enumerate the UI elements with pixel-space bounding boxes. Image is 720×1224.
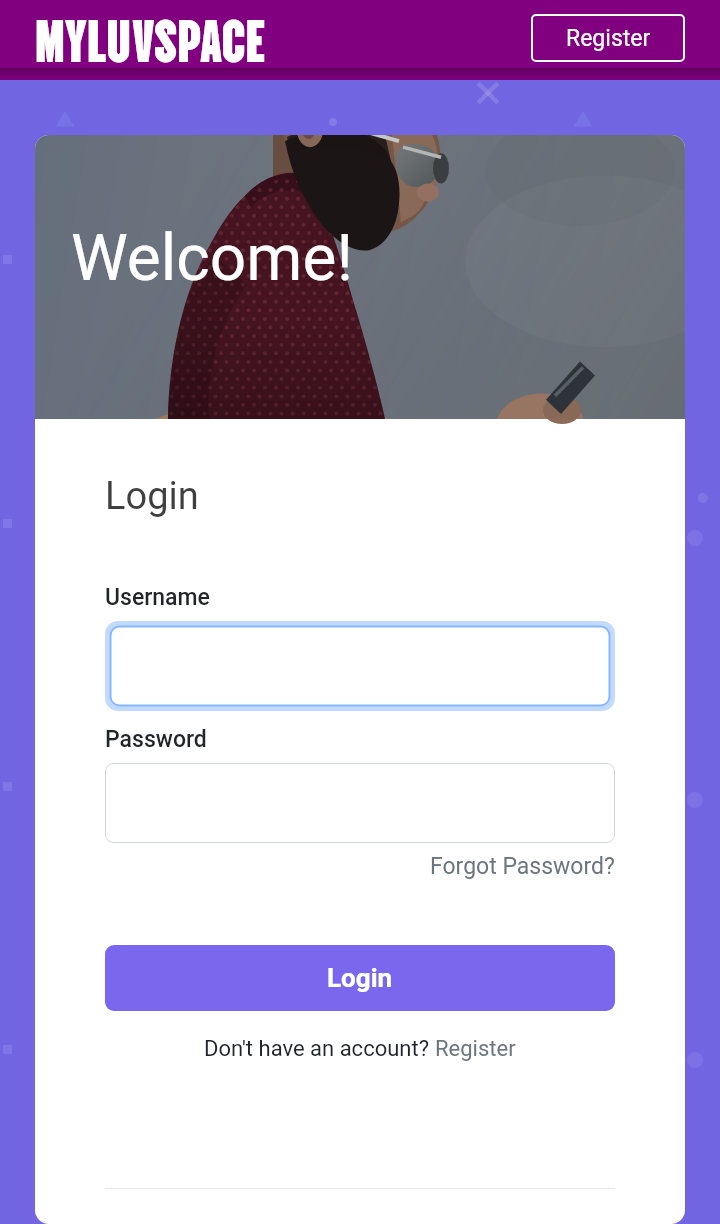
button[interactable] [105, 621, 615, 711]
staticText: Register [435, 1036, 516, 1062]
staticText: MYLUVSPACE [35, 0, 266, 72]
staticText: Login [327, 963, 393, 993]
staticText: Register [566, 25, 651, 52]
button[interactable]: Login [105, 945, 615, 1011]
button[interactable]: MYLUVSPACE [35, 0, 266, 72]
button[interactable] [105, 763, 615, 843]
button[interactable]: Register [435, 1036, 516, 1062]
button[interactable]: Forgot Password? [430, 853, 615, 880]
staticText: Forgot Password? [430, 853, 615, 880]
staticText: Login [105, 474, 199, 519]
staticText: Welcome! [71, 221, 353, 296]
staticText: Don't have an account? [204, 1036, 435, 1062]
staticText: Username [105, 584, 210, 611]
staticText: Password [105, 726, 207, 753]
button[interactable]: Register [531, 14, 685, 62]
